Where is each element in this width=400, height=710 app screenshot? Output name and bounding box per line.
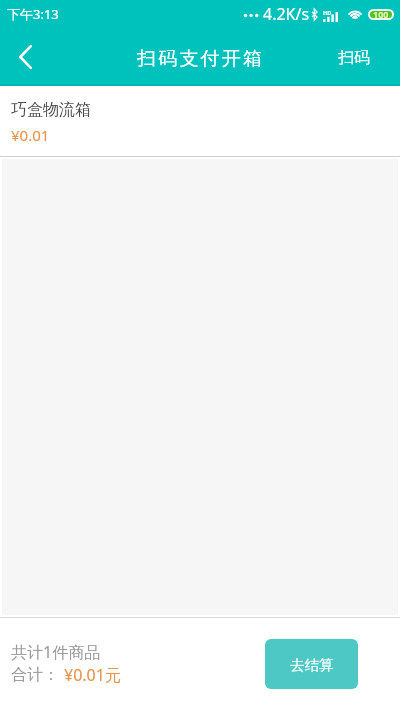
staticText: ¥0.01 xyxy=(11,125,50,145)
staticText: 共计1件商品 xyxy=(11,641,101,663)
staticText: 扫码 xyxy=(338,48,370,68)
staticText: 去结算 xyxy=(290,656,334,674)
staticText: 扫码支付开箱 xyxy=(137,47,265,71)
staticText: 100 xyxy=(373,8,389,19)
staticText: ¥0.01元 xyxy=(64,664,121,686)
staticText: HD xyxy=(323,9,332,16)
staticText: 合计： xyxy=(11,665,59,685)
staticText: 下午3:13 xyxy=(7,5,59,23)
button[interactable]: 去结算 xyxy=(265,639,358,689)
staticText: 4.2K/s xyxy=(263,3,310,25)
button[interactable]: 巧盒物流箱 xyxy=(0,86,400,156)
button[interactable]: Back xyxy=(0,32,50,82)
button[interactable]: 扫码 xyxy=(338,28,370,86)
staticText: 巧盒物流箱 xyxy=(11,100,91,120)
